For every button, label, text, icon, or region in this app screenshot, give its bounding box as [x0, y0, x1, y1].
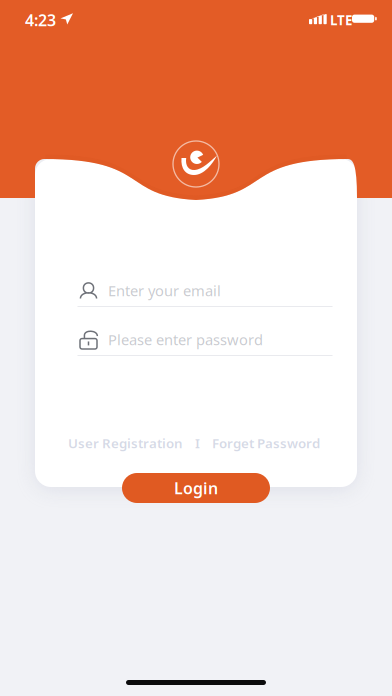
staticText: Enter your email — [108, 281, 221, 300]
staticText: Please enter password — [108, 330, 263, 349]
staticText: I — [195, 434, 200, 452]
staticText: LTE — [330, 11, 352, 29]
staticText: Login — [174, 477, 218, 499]
staticText: Forget Password — [212, 434, 320, 452]
button[interactable]: Forget Password — [212, 434, 320, 452]
staticText: User Registration — [68, 434, 183, 452]
staticText: 4:23 — [25, 9, 56, 31]
button[interactable]: Login — [122, 473, 270, 503]
button[interactable]: User Registration — [68, 434, 183, 452]
